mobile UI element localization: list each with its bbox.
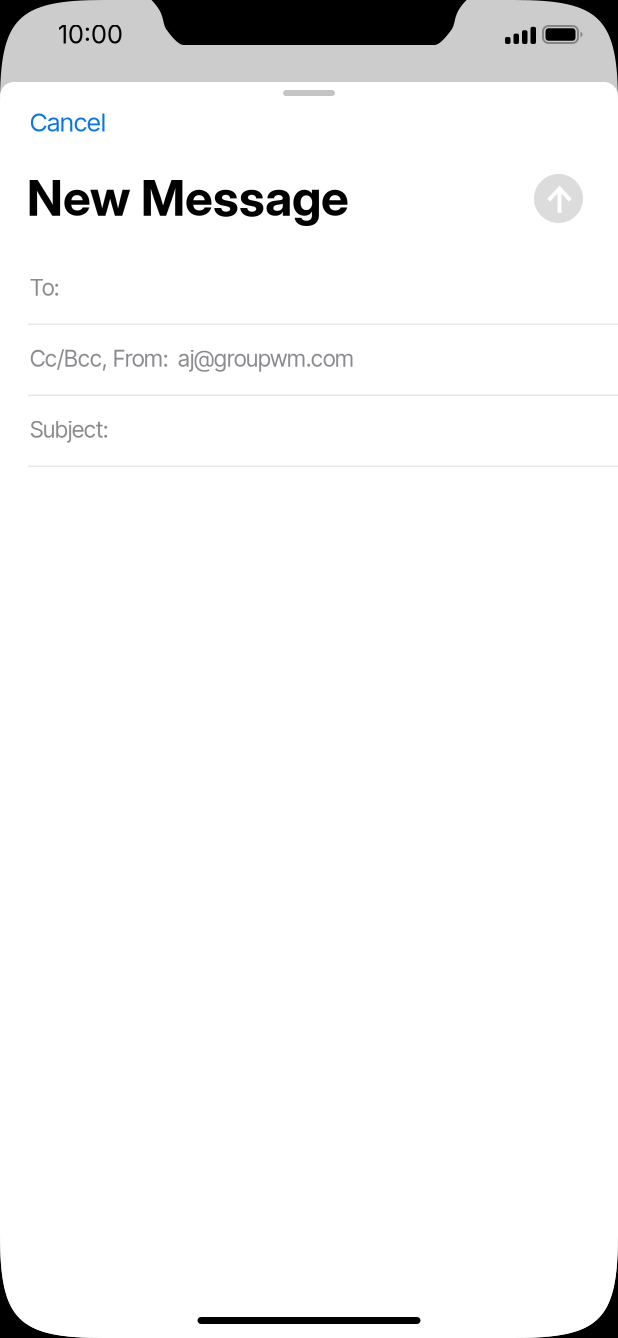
button[interactable]: Subject: [0, 396, 618, 467]
staticText: Cancel [30, 107, 106, 138]
staticText: Cc/Bcc, From: [30, 345, 168, 372]
staticText: aj@groupwm.com [168, 345, 354, 372]
button[interactable]: Cc/Bcc, From: [0, 325, 618, 396]
button[interactable]: To: [0, 254, 618, 325]
staticText: To: [30, 274, 59, 301]
button[interactable]: Cancel [22, 100, 114, 145]
button[interactable]: Send [534, 174, 583, 223]
staticText: 10:00 [58, 19, 123, 50]
staticText: New Message [27, 168, 349, 228]
staticText: Subject: [30, 416, 108, 443]
